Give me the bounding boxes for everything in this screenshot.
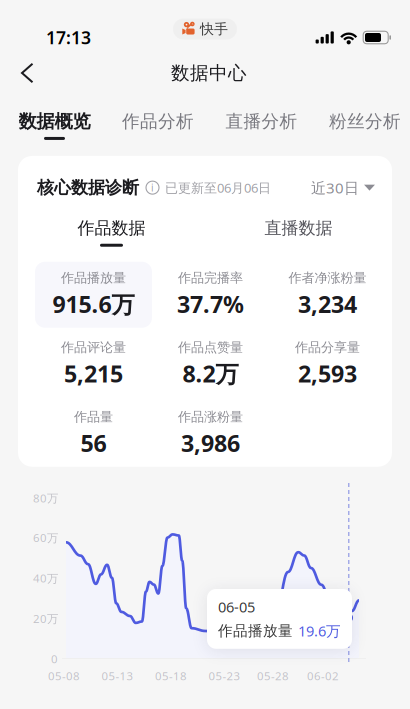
staticText: i [151,181,154,194]
staticText: 40万 [33,570,58,586]
staticText: 作者净涨粉量 [288,270,366,286]
button[interactable]: 作品数据 [18,217,205,247]
staticText: 19.6万 [298,621,341,641]
staticText: 直播数据 [264,217,332,239]
staticText: 作品数据 [77,217,145,239]
button[interactable]: 直播分析 [210,99,313,147]
staticText: 3,986 [181,427,240,459]
staticText: 粉丝分析 [329,110,401,133]
button[interactable]: 作品完播率 [152,262,269,328]
staticText: 20万 [33,611,58,626]
button[interactable]: Back [0,47,46,99]
button[interactable]: 作品涨粉量 [152,401,269,467]
staticText: 05-08 [48,668,80,683]
staticText: 915.6万 [52,288,134,320]
staticText: 核心数据诊断 [37,177,139,198]
staticText: 37.7% [177,288,244,320]
staticText: 作品分析 [122,110,194,133]
staticText: 8.2万 [182,358,238,389]
staticText: 作品分享量 [295,339,360,356]
staticText: 快手 [200,20,228,38]
staticText: 56 [80,427,106,459]
button[interactable]: 作品点赞量 [152,331,269,397]
staticText: 05-23 [208,668,240,683]
staticText: 5,215 [64,358,123,389]
staticText: 60万 [33,530,58,545]
staticText: 作品播放量 [61,270,126,286]
staticText: 作品完播率 [178,270,243,286]
staticText: 17:13 [46,25,91,49]
button[interactable]: 作品播放量 [35,262,152,328]
staticText: 数据中心 [171,61,247,85]
staticText: 作品评论量 [61,339,126,356]
staticText: 数据概览 [18,110,90,133]
staticText: 2,593 [298,358,357,389]
staticText: 作品点赞量 [178,339,243,356]
staticText: 06-05 [218,597,255,617]
button[interactable]: 作品分析 [106,99,210,147]
button[interactable]: 粉丝分析 [313,99,410,147]
button[interactable]: 作品分享量 [269,331,386,397]
staticText: 作品量 [74,409,113,425]
staticText: 3,234 [298,288,357,320]
staticText: 已更新至06月06日 [165,179,271,196]
button[interactable]: 近30日 [311,177,375,198]
staticText: 直播分析 [225,110,297,133]
button[interactable]: 直播数据 [205,217,392,247]
button[interactable]: 作者净涨粉量 [269,262,386,328]
staticText: 作品涨粉量 [178,409,243,425]
staticText: 近30日 [311,177,359,198]
staticText: 作品播放量 [218,622,293,640]
button[interactable]: 作品量 [35,401,152,467]
staticText: 0 [51,651,58,666]
staticText: 06-02 [307,668,339,683]
button[interactable]: 作品评论量 [35,331,152,397]
button[interactable]: 数据概览 [3,99,106,147]
staticText: 05-28 [257,668,289,683]
staticText: 05-18 [155,668,187,683]
staticText: 05-13 [101,668,133,683]
staticText: 80万 [33,490,58,506]
